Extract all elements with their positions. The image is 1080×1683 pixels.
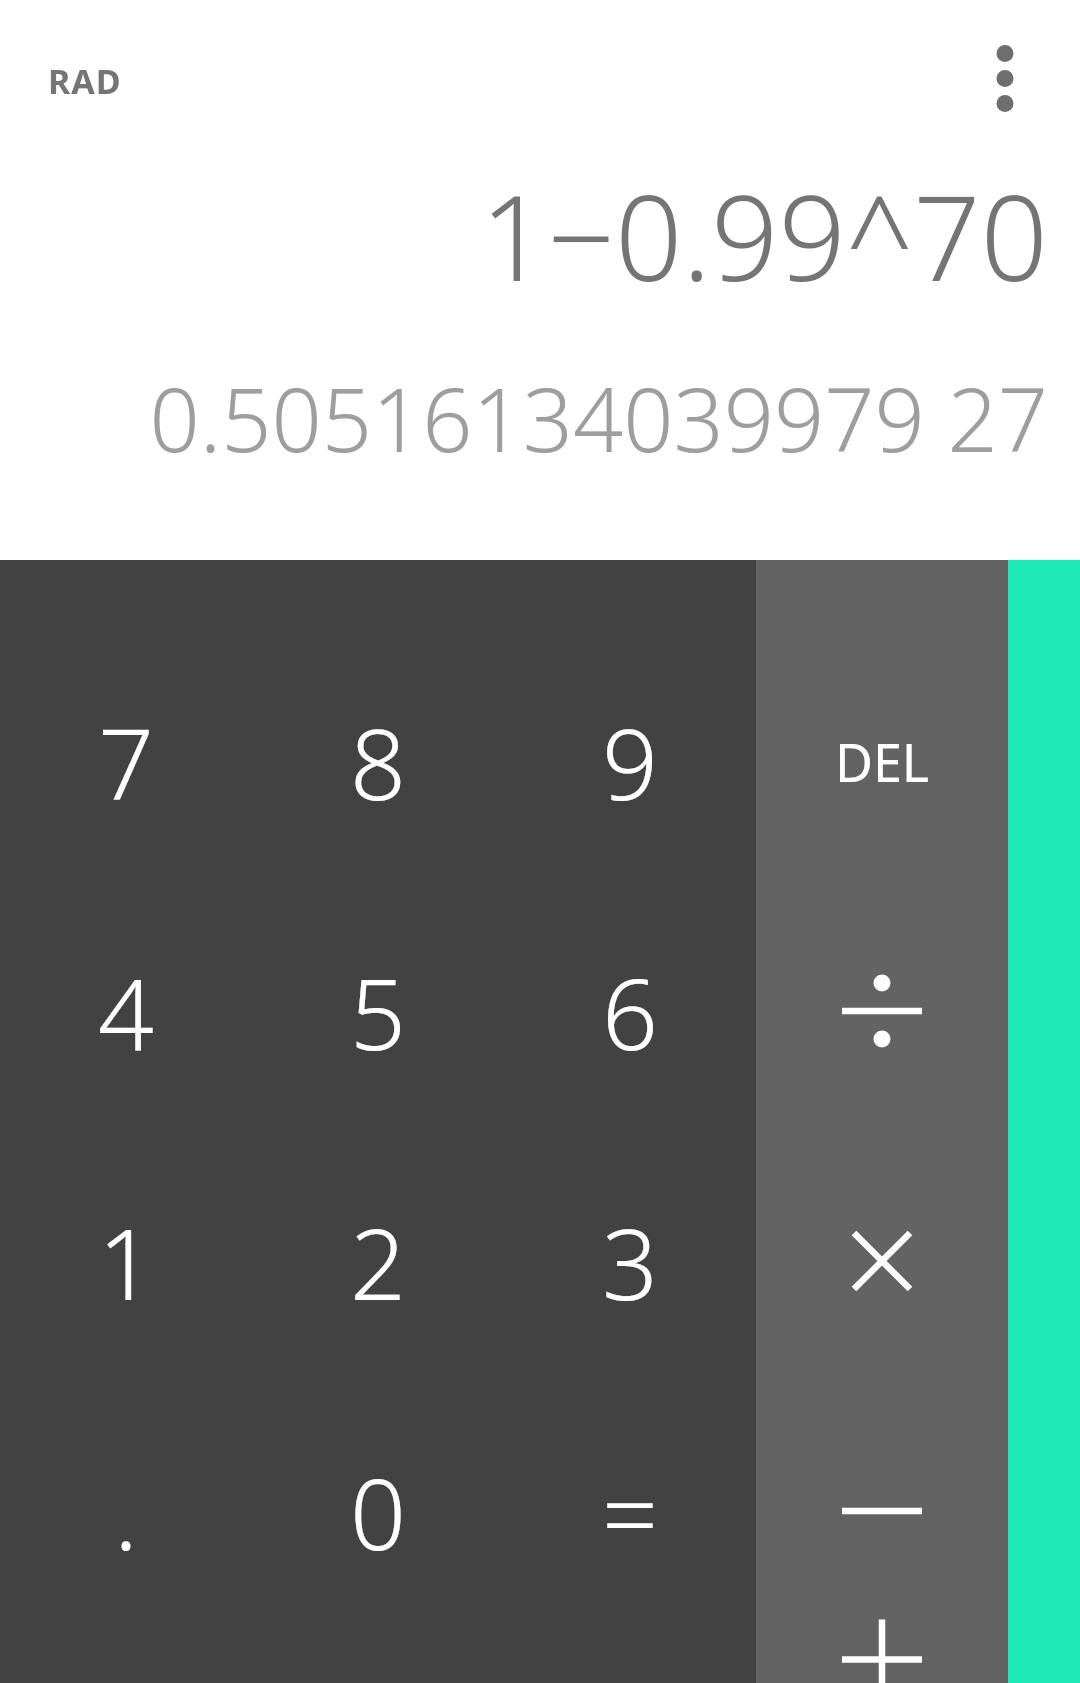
staticText: DEL: [835, 726, 930, 797]
button[interactable]: Divide: [756, 886, 1008, 1136]
staticText: 6: [602, 945, 658, 1078]
button[interactable]: .: [0, 1386, 252, 1636]
staticText: 1−0.99^70: [480, 155, 1048, 316]
button[interactable]: Minus: [756, 1386, 1008, 1636]
staticText: 0: [350, 1445, 406, 1578]
button[interactable]: RAD: [48, 58, 122, 104]
button[interactable]: =: [504, 1386, 756, 1636]
staticText: 7: [98, 695, 154, 828]
staticText: =: [602, 1445, 658, 1578]
button[interactable]: Multiply: [756, 1136, 1008, 1386]
button[interactable]: 3: [504, 1136, 756, 1386]
button[interactable]: 9: [504, 636, 756, 886]
button[interactable]: DEL: [756, 636, 1008, 886]
staticText: 8: [350, 695, 406, 828]
staticText: .: [114, 1445, 138, 1578]
button[interactable]: 1: [0, 1136, 252, 1386]
button[interactable]: 6: [504, 886, 756, 1136]
button[interactable]: More options: [950, 16, 1060, 141]
button[interactable]: 5: [252, 886, 504, 1136]
staticText: 5: [350, 945, 406, 1078]
button[interactable]: 8: [252, 636, 504, 886]
button[interactable]: 2: [252, 1136, 504, 1386]
staticText: 1: [98, 1195, 154, 1328]
staticText: 4: [98, 945, 154, 1078]
button[interactable]: 0: [252, 1386, 504, 1636]
staticText: 9: [602, 695, 658, 828]
button[interactable]: 4: [0, 886, 252, 1136]
staticText: 2: [350, 1195, 406, 1328]
staticText: RAD: [48, 58, 122, 104]
button[interactable]: Plus: [756, 1636, 1008, 1683]
staticText: 3: [602, 1195, 658, 1328]
button[interactable]: 7: [0, 636, 252, 886]
staticText: 0.50516134039979 27: [149, 358, 1048, 478]
